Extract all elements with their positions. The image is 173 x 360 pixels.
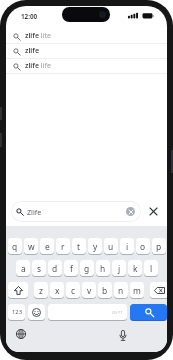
button[interactable]: k	[128, 260, 142, 277]
staticText: x	[55, 285, 60, 296]
staticText: v	[87, 285, 92, 296]
staticText: e	[45, 241, 50, 252]
button[interactable]: v	[82, 282, 96, 299]
button[interactable]: m	[130, 282, 144, 299]
button[interactable]: t	[72, 238, 86, 255]
staticText: zlife lite	[25, 31, 51, 41]
button[interactable]	[28, 304, 45, 321]
button[interactable]: EN PT	[48, 304, 127, 321]
staticText: n	[118, 285, 124, 296]
button[interactable]: 123	[8, 304, 25, 321]
staticText: t	[77, 241, 81, 252]
button[interactable]: b	[98, 282, 112, 299]
button[interactable]	[150, 282, 167, 299]
button[interactable]: zlife lite	[6, 29, 167, 43]
button[interactable]: u	[104, 238, 118, 255]
staticText: l	[150, 263, 153, 274]
staticText: d	[52, 263, 58, 274]
button[interactable]: l	[144, 260, 158, 277]
button[interactable]: c	[66, 282, 80, 299]
button[interactable]: j	[112, 260, 126, 277]
button[interactable]: w	[24, 238, 38, 255]
staticText: c	[71, 285, 76, 296]
staticText: p	[156, 241, 162, 252]
button[interactable]: q	[8, 238, 22, 255]
staticText: 123	[12, 308, 22, 316]
button[interactable]: i	[120, 238, 134, 255]
staticText: y	[93, 241, 98, 252]
staticText: f	[70, 263, 73, 274]
staticText: zlife	[25, 46, 40, 56]
staticText: Zlife	[27, 207, 42, 217]
staticText: j	[118, 263, 121, 274]
staticText: q	[12, 241, 18, 252]
staticText: m	[133, 285, 141, 296]
staticText: b	[102, 285, 108, 296]
button[interactable]	[15, 328, 27, 340]
staticText: o	[140, 241, 146, 252]
button[interactable]	[147, 205, 159, 217]
button[interactable]: g	[80, 260, 94, 277]
staticText: g	[84, 263, 90, 274]
button[interactable]: y	[88, 238, 102, 255]
button[interactable]: r	[56, 238, 70, 255]
staticText: z	[39, 285, 43, 296]
staticText: zlife life	[25, 61, 51, 71]
button[interactable]: n	[114, 282, 128, 299]
button[interactable]: p	[152, 238, 166, 255]
staticText: 12:00	[21, 12, 38, 21]
button[interactable]: e	[40, 238, 54, 255]
staticText: r	[61, 241, 65, 252]
staticText: k	[133, 263, 138, 274]
button[interactable]: d	[48, 260, 62, 277]
button[interactable]: z	[34, 282, 48, 299]
button[interactable]: s	[32, 260, 46, 277]
staticText: i	[126, 241, 129, 252]
staticText: u	[108, 241, 114, 252]
staticText: s	[37, 263, 42, 274]
button[interactable]: zlife life	[6, 59, 167, 73]
button[interactable]: o	[136, 238, 150, 255]
button[interactable]: x	[50, 282, 64, 299]
button[interactable]	[130, 304, 167, 321]
staticText: a	[21, 263, 26, 274]
staticText: EN PT	[112, 310, 123, 315]
button[interactable]	[117, 330, 129, 342]
button[interactable]	[8, 282, 28, 299]
staticText: h	[100, 263, 106, 274]
button[interactable]: h	[96, 260, 110, 277]
button[interactable]: f	[64, 260, 78, 277]
button[interactable]	[126, 207, 135, 216]
button[interactable]: a	[16, 260, 30, 277]
button[interactable]: zlife	[6, 44, 167, 58]
staticText: w	[28, 241, 35, 252]
button[interactable]: Zlife	[11, 201, 141, 222]
